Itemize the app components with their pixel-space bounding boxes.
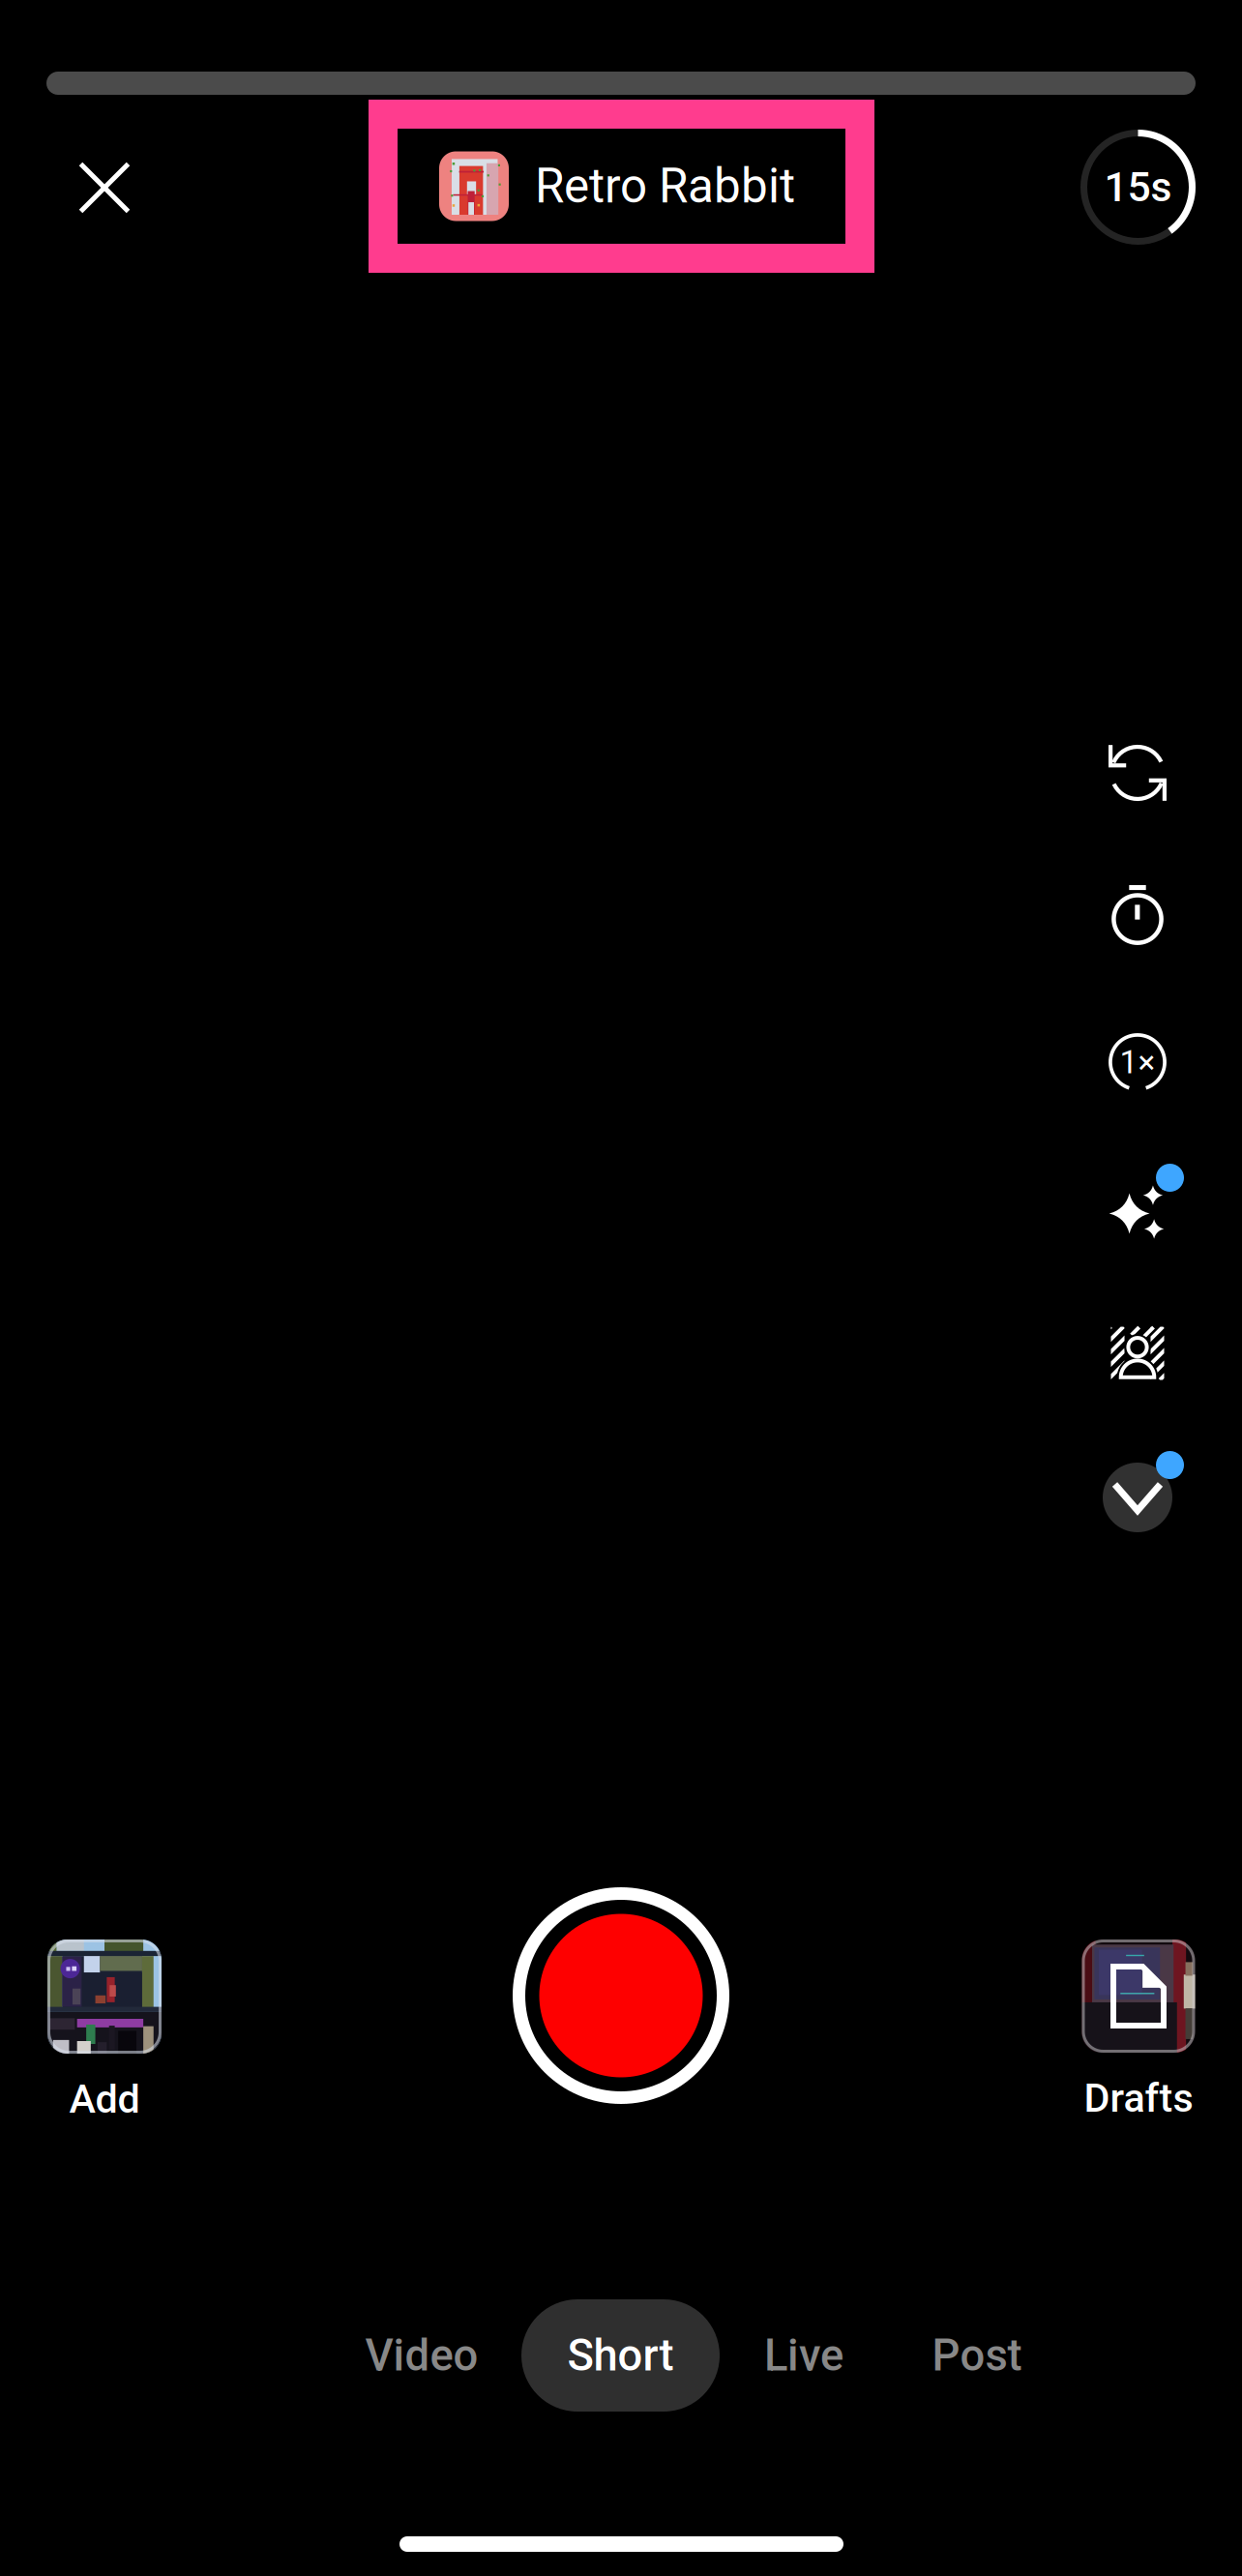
button[interactable]: Flip camera: [1097, 721, 1190, 814]
staticText: Short: [567, 2330, 674, 2381]
button[interactable]: Playback speed: [1097, 1010, 1190, 1103]
button[interactable]: Timer: [1097, 862, 1190, 955]
button[interactable]: Retro Rabbit: [383, 114, 860, 258]
staticText: 15s: [1104, 163, 1172, 211]
button[interactable]: Effects: [1097, 1158, 1190, 1251]
staticText: Add: [69, 2076, 140, 2122]
staticText: Post: [932, 2330, 1022, 2381]
button[interactable]: Record: [505, 1880, 737, 2112]
button[interactable]: Drafts: [1051, 1939, 1226, 2121]
staticText: 1×: [1120, 1043, 1155, 1081]
button[interactable]: Close: [47, 131, 162, 245]
button[interactable]: Post: [890, 2299, 1064, 2412]
staticText: Live: [764, 2330, 843, 2381]
staticText: Drafts: [1084, 2075, 1193, 2121]
staticText: Video: [365, 2330, 478, 2381]
button[interactable]: Green screen: [1097, 1301, 1190, 1394]
button[interactable]: More options: [1097, 1445, 1190, 1538]
button[interactable]: Add: [17, 1939, 192, 2122]
button[interactable]: Video: [325, 2299, 518, 2412]
button[interactable]: Live: [717, 2299, 891, 2412]
button[interactable]: Recording length 15 seconds: [1073, 122, 1203, 252]
staticText: Retro Rabbit: [535, 158, 795, 214]
button[interactable]: Short: [521, 2299, 720, 2412]
